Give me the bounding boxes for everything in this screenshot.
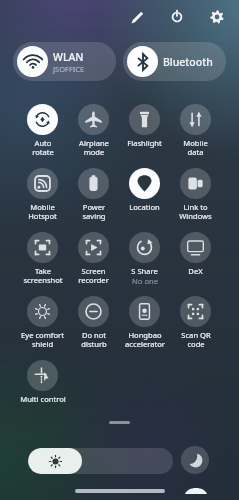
button[interactable]: Dark mode xyxy=(181,446,209,474)
button[interactable]: Multi control xyxy=(17,358,68,404)
button[interactable]: Link to Windows xyxy=(170,166,221,222)
button[interactable]: Hongbao accelerator xyxy=(119,294,170,350)
staticText: Location xyxy=(129,202,160,212)
button[interactable]: Auto rotate xyxy=(17,102,68,158)
staticText: Mobile data xyxy=(183,138,208,158)
staticText: Power saving xyxy=(82,202,106,222)
button[interactable]: S Share xyxy=(119,230,170,286)
staticText: Do not disturb xyxy=(81,330,107,350)
button[interactable]: Take screenshot xyxy=(17,230,68,286)
button[interactable]: Mobile Hotspot xyxy=(17,166,68,222)
button[interactable]: Scan QR code xyxy=(170,294,221,350)
button[interactable]: Airplane mode xyxy=(68,102,119,158)
staticText: JSOFFICE xyxy=(53,64,85,74)
button[interactable]: Mobile data xyxy=(170,102,221,158)
staticText: S Share xyxy=(131,266,158,276)
button[interactable]: DeX xyxy=(170,230,221,276)
button[interactable]: Bluetooth xyxy=(123,42,226,81)
staticText: Eye comfort shield xyxy=(21,330,64,350)
staticText: DeX xyxy=(188,266,203,276)
button[interactable]: WLAN xyxy=(13,42,116,81)
staticText: WLAN xyxy=(53,50,84,64)
button[interactable]: Eye comfort shield xyxy=(17,294,68,350)
staticText: Screen recorder xyxy=(78,266,109,286)
button[interactable]: Do not disturb xyxy=(68,294,119,350)
staticText: Auto rotate xyxy=(32,138,54,158)
staticText: Hongbao accelerator xyxy=(125,330,165,350)
staticText: Bluetooth xyxy=(163,55,213,69)
staticText: Take screenshot xyxy=(23,266,63,286)
button[interactable]: Power off xyxy=(165,5,189,29)
button[interactable]: Power saving xyxy=(68,166,119,222)
staticText: Scan QR code xyxy=(181,330,211,350)
staticText: No one xyxy=(132,276,158,286)
staticText: Mobile Hotspot xyxy=(28,202,57,222)
button[interactable]: Brightness xyxy=(28,448,173,474)
staticText: Flashlight xyxy=(127,138,162,148)
staticText: Multi control xyxy=(20,394,66,404)
staticText: Link to Windows xyxy=(179,202,212,222)
button[interactable]: Edit quick settings xyxy=(125,5,149,29)
staticText: Airplane mode xyxy=(79,138,109,158)
button[interactable]: Flashlight xyxy=(119,102,170,148)
button[interactable]: Location xyxy=(119,166,170,212)
button[interactable]: Screen recorder xyxy=(68,230,119,286)
button[interactable]: Settings xyxy=(205,5,229,29)
